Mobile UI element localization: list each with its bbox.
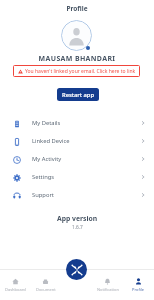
staticText: Notification (97, 287, 119, 292)
staticText: Support (32, 191, 54, 199)
staticText: My Activity (32, 155, 62, 163)
staticText: Document (36, 287, 56, 292)
staticText: Profile (132, 287, 145, 292)
staticText: Settings (32, 173, 55, 181)
button[interactable]: Settings (0, 168, 154, 186)
button[interactable]: You haven't linked your email. Click her… (13, 65, 140, 77)
button[interactable]: Profile (123, 278, 154, 292)
button[interactable]: My Details (0, 114, 154, 132)
button[interactable]: My Activity (0, 150, 154, 168)
button[interactable]: Restart app (57, 88, 99, 101)
staticText: My Details (32, 119, 61, 127)
staticText: Profile (0, 4, 154, 13)
button[interactable]: Support (0, 186, 154, 204)
button[interactable]: Dashboard (0, 278, 30, 292)
button[interactable]: Linked Device (0, 132, 154, 150)
button[interactable]: Change photo (86, 46, 90, 50)
button[interactable]: Notification (92, 278, 123, 292)
staticText: MAUSAM BHANDARI (0, 54, 154, 64)
staticText: Restart app (62, 91, 95, 99)
staticText: App version (57, 214, 98, 223)
button[interactable]: Scan (66, 259, 87, 280)
button[interactable]: Document (30, 278, 61, 292)
staticText: Linked Device (32, 137, 70, 145)
staticText: 1.6.7 (72, 224, 83, 231)
staticText: You haven't linked your email. Click her… (25, 68, 136, 75)
staticText: Dashboard (5, 287, 26, 292)
